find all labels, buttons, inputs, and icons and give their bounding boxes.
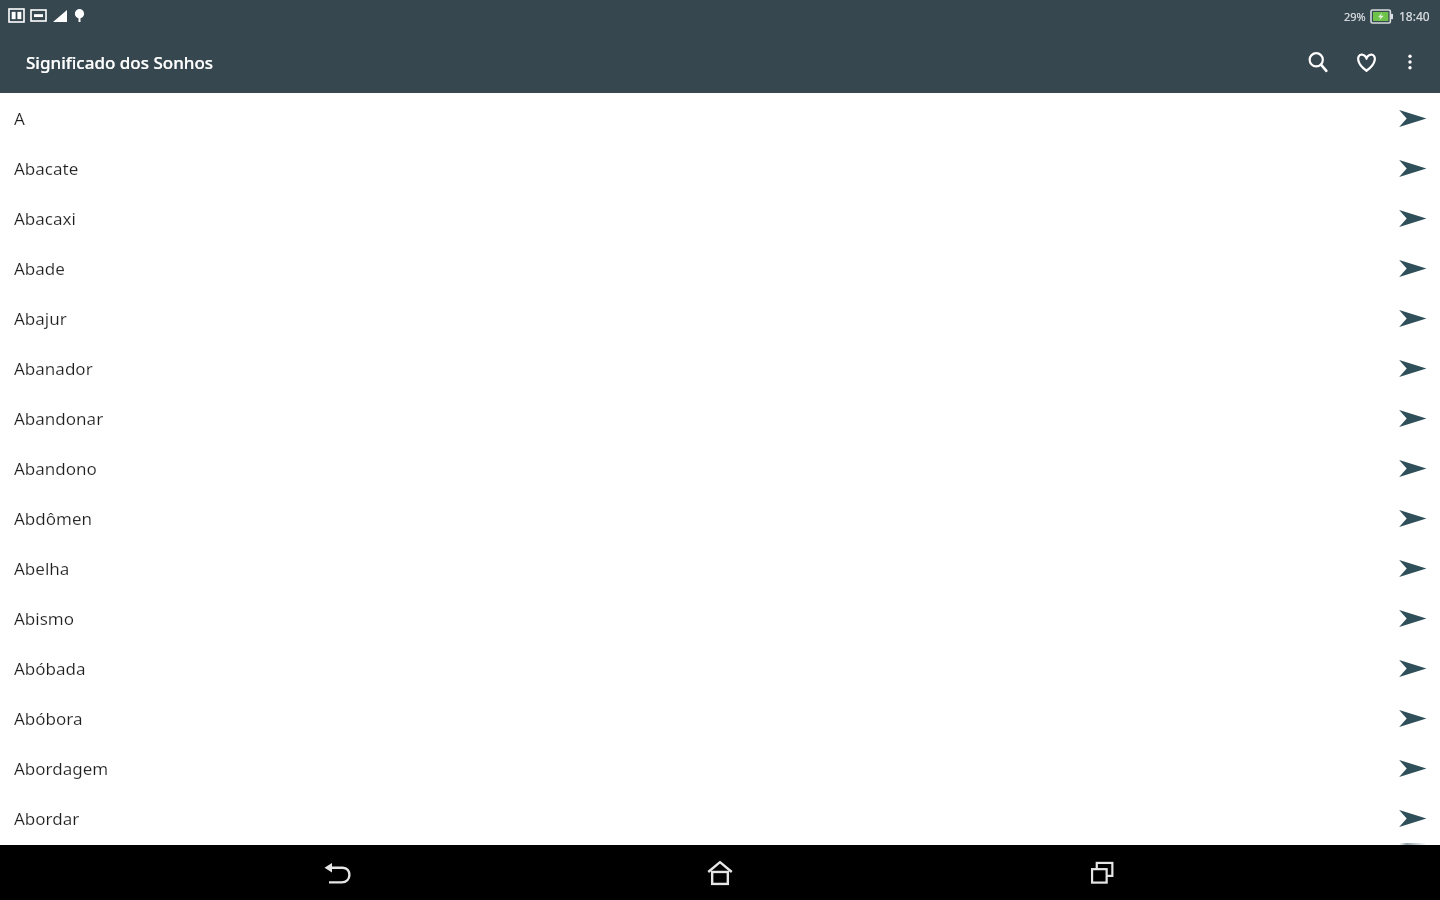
staticText: Abordar [14, 807, 1384, 830]
staticText: Abordagem [14, 757, 1384, 780]
button[interactable]: Abandonar [0, 393, 1440, 443]
staticText: Abajur [14, 307, 1384, 330]
staticText: Abandono [14, 457, 1384, 480]
staticText: Abóbora [14, 707, 1384, 730]
staticText: Abacaxi [14, 207, 1384, 230]
button[interactable]: Home [675, 845, 765, 900]
staticText: 29% [1344, 9, 1366, 24]
button[interactable]: Abóbada [0, 643, 1440, 693]
button[interactable]: Favorites [1342, 38, 1390, 86]
staticText: Abelha [14, 557, 1384, 580]
staticText: Abade [14, 257, 1384, 280]
button[interactable]: Abelha [0, 543, 1440, 593]
button[interactable]: Abdômen [0, 493, 1440, 543]
staticText: Abóbada [14, 657, 1384, 680]
button[interactable]: Abismo [0, 593, 1440, 643]
button[interactable]: Abanador [0, 343, 1440, 393]
button[interactable]: A [0, 93, 1440, 143]
button[interactable]: Abajur [0, 293, 1440, 343]
button[interactable]: Abacate [0, 143, 1440, 193]
button[interactable]: Abandono [0, 443, 1440, 493]
button[interactable]: Abordagem [0, 743, 1440, 793]
staticText: Abacate [14, 157, 1384, 180]
button[interactable]: More options [1390, 42, 1430, 82]
staticText: 18:40 [1399, 8, 1430, 24]
button[interactable]: Abraçar [0, 843, 1440, 845]
button[interactable]: Abordar [0, 793, 1440, 843]
button[interactable]: Back [293, 845, 383, 900]
staticText: Abanador [14, 357, 1384, 380]
button[interactable]: Search [1294, 38, 1342, 86]
button[interactable]: Recent apps [1058, 845, 1148, 900]
button[interactable]: Abacaxi [0, 193, 1440, 243]
staticText: Abandonar [14, 407, 1384, 430]
button[interactable]: Abade [0, 243, 1440, 293]
staticText: Abdômen [14, 507, 1384, 530]
button[interactable]: Abóbora [0, 693, 1440, 743]
staticText: A [14, 107, 1384, 130]
staticText: Significado dos Sonhos [26, 51, 214, 74]
staticText: Abismo [14, 607, 1384, 630]
